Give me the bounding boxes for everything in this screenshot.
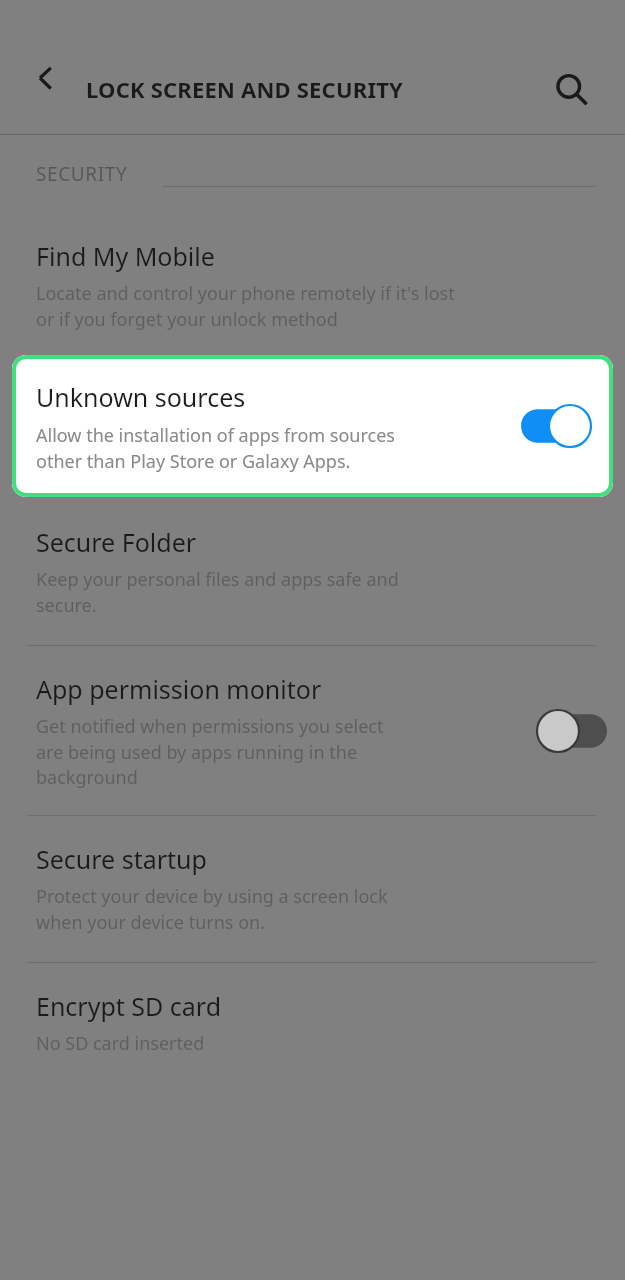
staticText: Locate and control your phone remotely i… [36, 281, 455, 331]
staticText: Secure Folder [36, 525, 197, 559]
button[interactable]: Unknown sources toggle, on [517, 398, 595, 454]
button[interactable]: Unknown sources [12, 355, 613, 497]
staticText: Encrypt SD card [36, 989, 222, 1023]
button[interactable]: Search [540, 58, 604, 122]
staticText: Allow the installation of apps from sour… [36, 423, 395, 473]
staticText: Protect your device by using a screen lo… [36, 884, 388, 934]
button[interactable]: Back [20, 52, 72, 104]
button[interactable]: App permission monitor toggle, off [533, 703, 611, 759]
button[interactable]: Encrypt SD card [0, 963, 625, 1082]
staticText: No SD card inserted [36, 1031, 205, 1056]
button[interactable]: App permission monitor [0, 646, 625, 815]
staticText: SECURITY [36, 161, 128, 187]
staticText: App permission monitor [36, 672, 322, 706]
button[interactable]: Secure Folder [0, 497, 625, 645]
button[interactable]: Secure startup [0, 816, 625, 962]
staticText: Unknown sources [36, 380, 246, 414]
staticText: Find My Mobile [36, 239, 215, 273]
staticText: Get notified when permissions you select… [36, 714, 384, 789]
button[interactable]: Find My Mobile [0, 203, 625, 355]
staticText: Secure startup [36, 842, 207, 876]
staticText: Keep your personal files and apps safe a… [36, 567, 399, 617]
staticText: LOCK SCREEN AND SECURITY [86, 74, 404, 104]
